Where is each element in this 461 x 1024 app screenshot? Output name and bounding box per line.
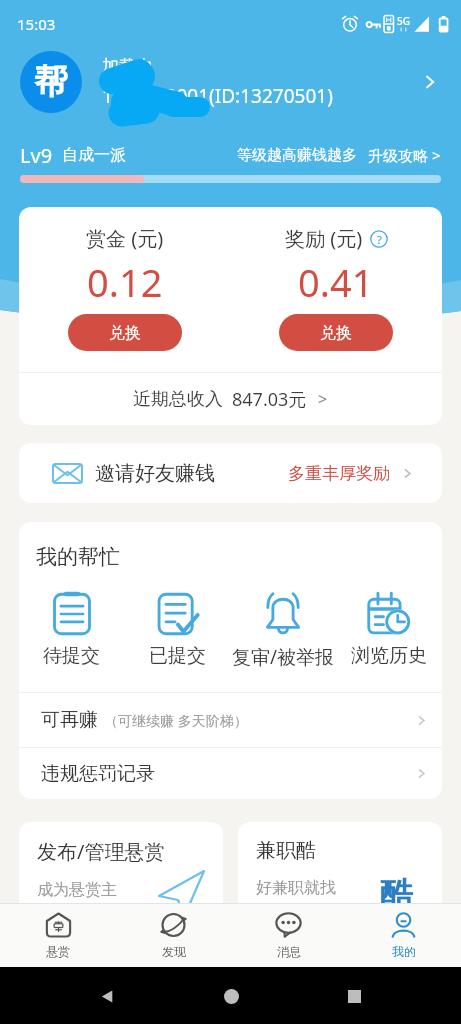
button[interactable]: 我的 — [346, 904, 461, 967]
staticText: 待提交 — [43, 644, 100, 668]
button[interactable]: Recents — [337, 979, 371, 1013]
button[interactable]: 兑换 — [279, 314, 393, 351]
staticText: 加载中 — [102, 56, 153, 77]
staticText: 悬赏 — [46, 944, 70, 959]
staticText: 成为悬赏主 — [37, 880, 117, 900]
button[interactable]: 近期总收入 — [19, 373, 442, 425]
button[interactable]: 消息 — [231, 904, 346, 967]
button[interactable]: 发现 — [116, 904, 231, 967]
staticText: 多重丰厚奖励 — [288, 463, 390, 484]
staticText: 0.41 — [298, 256, 374, 308]
staticText: 邀请好友赚钱 — [95, 461, 215, 486]
staticText: 复审/被举报 — [232, 644, 335, 670]
staticText: 奖励 (元) — [285, 225, 363, 252]
staticText: 等级越高赚钱越多 — [237, 146, 357, 165]
button[interactable]: 复审/被举报 — [230, 591, 336, 670]
button[interactable]: Profile details — [419, 71, 441, 93]
button[interactable]: 发布/管理悬赏 — [19, 822, 223, 917]
staticText: 发现 — [162, 944, 186, 959]
button[interactable]: 已提交 — [124, 591, 230, 668]
staticText: 0.12 — [87, 256, 163, 308]
staticText: 5G — [397, 14, 410, 28]
staticText: 兼职酷 — [256, 838, 316, 863]
staticText: 我的帮忙 — [36, 544, 120, 570]
staticText: 847.03元 — [232, 387, 307, 412]
staticText: 好兼职就找 — [256, 878, 336, 898]
staticText: Lv9 — [20, 142, 53, 169]
staticText: 升级攻略 > — [368, 145, 441, 165]
button[interactable]: Home — [214, 979, 248, 1013]
staticText: 浏览历史 — [351, 644, 427, 668]
staticText: 自成一派 — [62, 145, 126, 165]
staticText: 帮 — [34, 60, 68, 103]
staticText: ? — [377, 232, 382, 247]
button[interactable]: 违规惩罚记录 — [19, 748, 442, 799]
button[interactable]: Lv9 — [0, 140, 461, 183]
button[interactable]: 浏览历史 — [336, 591, 442, 668]
button[interactable]: 可再赚 — [19, 693, 442, 747]
button[interactable]: 邀请好友赚钱 — [19, 443, 442, 503]
staticText: 我的 — [392, 944, 416, 959]
staticText: 已提交 — [149, 644, 206, 668]
button[interactable]: 待提交 — [19, 591, 124, 668]
button[interactable]: Help — [370, 230, 388, 248]
staticText: > — [318, 388, 328, 410]
staticText: 酷 — [380, 874, 413, 915]
button[interactable]: 悬赏 — [0, 904, 116, 967]
staticText: 近期总收入 — [133, 388, 223, 411]
staticText: 消息 — [277, 944, 301, 959]
staticText: 赏金 (元) — [86, 225, 164, 252]
staticText: 兑换 — [109, 323, 141, 343]
staticText: 违规惩罚记录 — [41, 762, 155, 786]
staticText: 发布/管理悬赏 — [37, 838, 165, 865]
staticText: （可继续赚 多天阶梯） — [104, 711, 248, 730]
button[interactable]: 帮 — [0, 50, 461, 114]
button[interactable]: 兼职酷 — [238, 822, 442, 917]
staticText: 15:03 — [17, 14, 56, 34]
staticText: 13****0001(ID:13270501) — [102, 83, 333, 109]
staticText: 可再赚 — [41, 708, 98, 732]
button[interactable]: 兑换 — [68, 314, 182, 351]
staticText: 兑换 — [320, 323, 352, 343]
button[interactable]: Back — [90, 979, 124, 1013]
